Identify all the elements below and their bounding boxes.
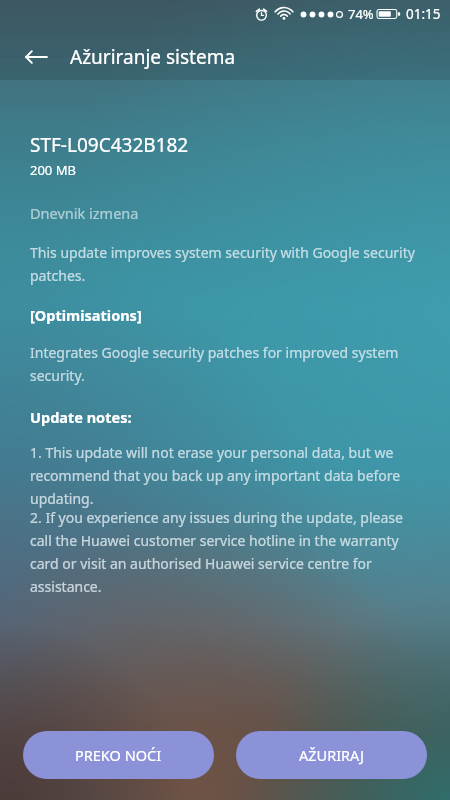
staticText: PREKO NOĆI xyxy=(75,745,162,765)
staticText: Ažuriranje sistema xyxy=(70,44,236,70)
staticText: 01:15 xyxy=(406,5,441,23)
staticText: Integrates Google security patches for i… xyxy=(30,343,420,385)
staticText: 74% xyxy=(348,5,374,23)
staticText: Dnevnik izmena xyxy=(30,203,139,223)
staticText: STF-L09C432B182 xyxy=(30,132,189,158)
staticText: AŽURIRAJ xyxy=(299,745,365,765)
staticText: 2. If you experience any issues during t… xyxy=(30,508,420,596)
button[interactable]: AŽURIRAJ xyxy=(236,731,427,779)
staticText: 200 MB xyxy=(30,161,76,179)
staticText: 1. This update will not erase your perso… xyxy=(30,443,420,508)
staticText: [Optimisations] xyxy=(30,305,142,325)
button[interactable]: Back xyxy=(14,35,58,79)
staticText: This update improves system security wit… xyxy=(30,243,420,285)
button[interactable]: PREKO NOĆI xyxy=(23,731,214,779)
staticText: Update notes: xyxy=(30,407,132,427)
